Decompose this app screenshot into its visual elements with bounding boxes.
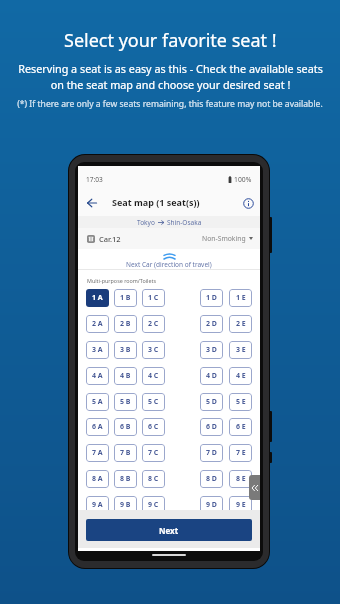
button[interactable]: 1 D: [200, 289, 223, 307]
button[interactable]: 1 B: [114, 289, 137, 307]
button[interactable]: 4 D: [200, 367, 223, 385]
staticText: Select your favorite seat !: [64, 28, 277, 53]
button[interactable]: 1 A: [86, 289, 109, 307]
button[interactable]: 2 C: [142, 315, 165, 333]
staticText: 5 D: [206, 397, 217, 407]
button[interactable]: 6 B: [114, 418, 137, 436]
button[interactable]: 2 D: [200, 315, 223, 333]
staticText: Tokyo: [137, 218, 155, 227]
staticText: 7 D: [206, 448, 217, 458]
button[interactable]: 2 B: [114, 315, 137, 333]
staticText: Shin-Osaka: [167, 218, 202, 227]
staticText: 8 B: [120, 474, 131, 484]
staticText: 7 A: [92, 448, 103, 458]
staticText: 2 E: [236, 319, 246, 329]
button[interactable]: 3 E: [229, 341, 252, 359]
staticText: 8 C: [148, 474, 159, 484]
button[interactable]: 4 A: [86, 367, 109, 385]
button[interactable]: 3 D: [200, 341, 223, 359]
staticText: Multi-purpose room/Toilets: [87, 277, 157, 284]
button[interactable]: 2 A: [86, 315, 109, 333]
staticText: 2 A: [92, 319, 103, 329]
staticText: 1 C: [148, 293, 159, 303]
button[interactable]: 8 D: [200, 470, 223, 488]
staticText: 6 C: [148, 422, 159, 432]
staticText: 4 D: [206, 371, 217, 381]
button[interactable]: 9 A: [86, 496, 109, 510]
staticText: 8 E: [236, 474, 246, 484]
button[interactable]: 8 A: [86, 470, 109, 488]
staticText: 8 A: [92, 474, 103, 484]
staticText: 3 B: [120, 345, 131, 355]
button[interactable]: 5 C: [142, 393, 165, 411]
button[interactable]: Information: [240, 195, 256, 211]
button[interactable]: 6 C: [142, 418, 165, 436]
staticText: Seat map (1 seat(s)): [112, 196, 200, 208]
staticText: 5 E: [236, 397, 246, 407]
staticText: 3 E: [236, 345, 246, 355]
staticText: 4 E: [236, 371, 246, 381]
staticText: 9 B: [120, 500, 131, 510]
button[interactable]: 9 D: [200, 496, 223, 510]
staticText: 6 E: [236, 422, 246, 432]
staticText: Car.12: [99, 234, 121, 244]
button[interactable]: 9 E: [229, 496, 252, 510]
button[interactable]: Next Car (direction of travel): [78, 249, 260, 270]
button[interactable]: 7 D: [200, 444, 223, 462]
button[interactable]: 9 C: [142, 496, 165, 510]
button[interactable]: 5 A: [86, 393, 109, 411]
staticText: 2 C: [148, 319, 159, 329]
button[interactable]: Collapse panel: [249, 475, 260, 500]
staticText: 7 E: [236, 448, 246, 458]
button[interactable]: 3 B: [114, 341, 137, 359]
button[interactable]: 8 E: [229, 470, 252, 488]
button[interactable]: Next: [86, 519, 252, 541]
staticText: Next: [159, 525, 179, 536]
staticText: 1 A: [92, 293, 103, 303]
staticText: 8 D: [206, 474, 217, 484]
staticText: 5 C: [148, 397, 159, 407]
button[interactable]: 7 E: [229, 444, 252, 462]
staticText: 2 B: [120, 319, 131, 329]
staticText: 2 D: [206, 319, 217, 329]
staticText: 9 C: [148, 500, 159, 510]
button[interactable]: 7 B: [114, 444, 137, 462]
staticText: 4 B: [120, 371, 131, 381]
staticText: 9 A: [92, 500, 103, 510]
button[interactable]: 7 C: [142, 444, 165, 462]
button[interactable]: 8 C: [142, 470, 165, 488]
staticText: Next Car (direction of travel): [126, 260, 212, 269]
staticText: 9 E: [236, 500, 246, 510]
button[interactable]: Back: [83, 194, 101, 212]
staticText: 4 A: [92, 371, 103, 381]
button[interactable]: 4 E: [229, 367, 252, 385]
button[interactable]: 7 A: [86, 444, 109, 462]
staticText: 6 B: [120, 422, 131, 432]
button[interactable]: 5 D: [200, 393, 223, 411]
staticText: 5 A: [92, 397, 103, 407]
staticText: 6 A: [92, 422, 103, 432]
button[interactable]: 5 E: [229, 393, 252, 411]
staticText: 3 D: [206, 345, 217, 355]
staticText: 4 C: [148, 371, 159, 381]
button[interactable]: 1 C: [142, 289, 165, 307]
staticText: 9 D: [206, 500, 217, 510]
button[interactable]: Tokyo: [137, 218, 202, 227]
button[interactable]: 4 C: [142, 367, 165, 385]
staticText: Non-Smoking: [202, 234, 246, 243]
button[interactable]: 6 D: [200, 418, 223, 436]
button[interactable]: 6 E: [229, 418, 252, 436]
staticText: 1 D: [206, 293, 217, 303]
button[interactable]: 9 B: [114, 496, 137, 510]
button[interactable]: 2 E: [229, 315, 252, 333]
button[interactable]: 1 E: [229, 289, 252, 307]
button[interactable]: 3 C: [142, 341, 165, 359]
button[interactable]: 3 A: [86, 341, 109, 359]
button[interactable]: 8 B: [114, 470, 137, 488]
button[interactable]: Non-Smoking: [202, 234, 253, 243]
button[interactable]: 6 A: [86, 418, 109, 436]
button[interactable]: 5 B: [114, 393, 137, 411]
button[interactable]: 4 B: [114, 367, 137, 385]
staticText: 100%: [234, 175, 252, 184]
staticText: 7 C: [148, 448, 159, 458]
